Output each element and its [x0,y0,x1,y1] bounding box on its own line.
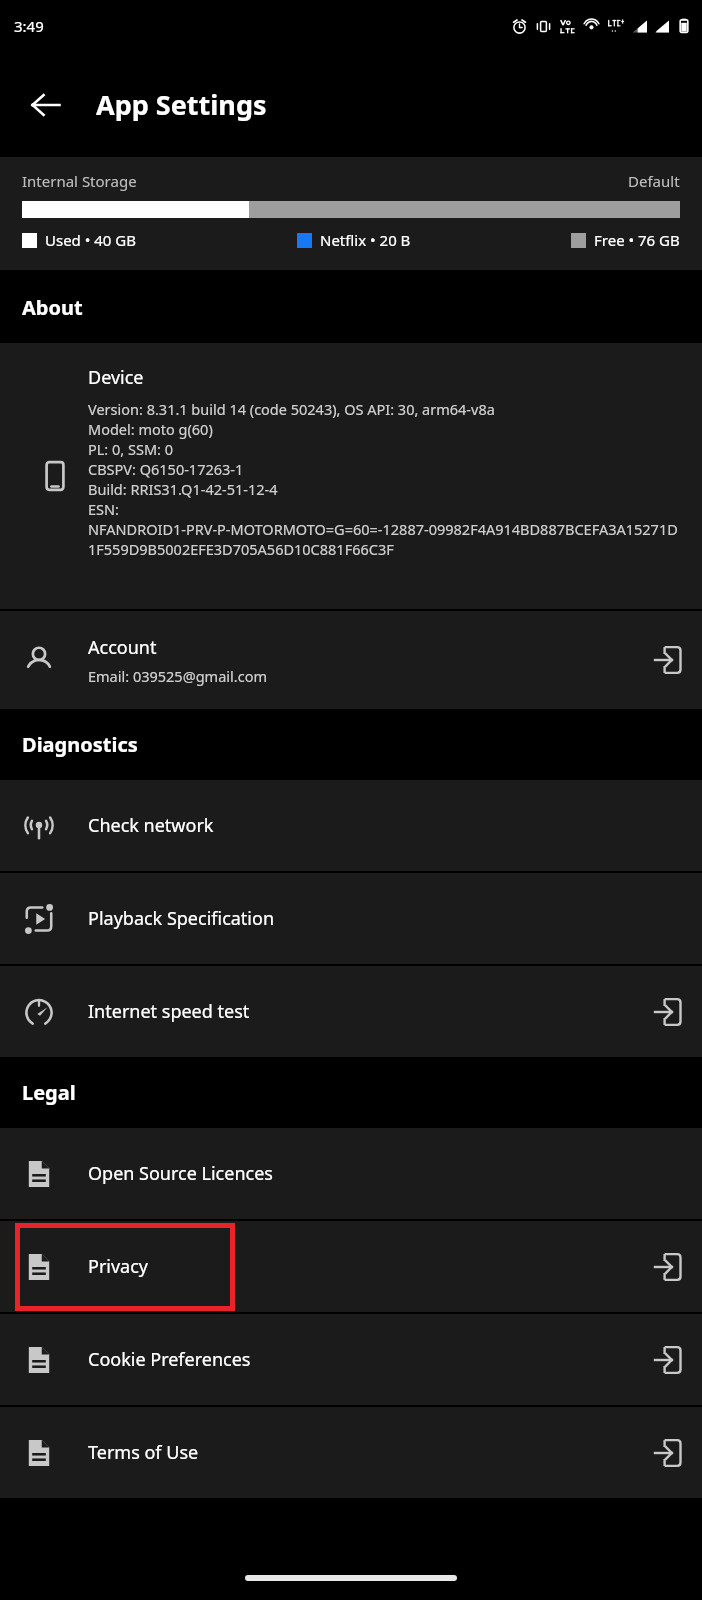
staticText: 3:49 [14,16,44,36]
staticText: Legal [22,1079,76,1106]
staticText: Build: RRIS31.Q1-42-51-12-4 [88,479,278,499]
staticText: Model: moto g(60) [88,419,213,439]
staticText: Email: 039525@gmail.com [88,666,267,686]
button[interactable]: Open Source Licences [0,1128,702,1219]
staticText: Internet speed test [88,999,652,1024]
button[interactable]: Device [0,343,702,609]
staticText: CBSPV: Q6150-17263-1 [88,459,244,479]
staticText: App Settings [96,86,267,123]
staticText: About [22,294,83,321]
staticText: Open Source Licences [88,1161,682,1186]
staticText: Playback Specification [88,906,682,931]
staticText: Check network [88,813,682,838]
staticText: Internal Storage [22,171,137,191]
button[interactable]: Account [0,611,702,709]
staticText: Version: 8.31.1 build 14 (code 50243), O… [88,399,495,419]
staticText: Default [628,171,680,191]
button[interactable]: Cookie Preferences [0,1314,702,1405]
button[interactable]: Check network [0,780,702,871]
button[interactable]: Terms of Use [0,1407,702,1498]
staticText: Used • 40 GB [45,230,137,250]
staticText: Device [88,365,144,390]
staticText: NFANDROID1-PRV-P-MOTORMOTO=G=60=-12887-0… [88,519,682,560]
staticText: Privacy [88,1254,652,1279]
staticText: Cookie Preferences [88,1347,652,1372]
staticText: Free • 76 GB [594,230,680,250]
button[interactable]: Back [20,79,72,131]
staticText: Account [88,635,157,660]
staticText: PL: 0, SSM: 0 [88,439,173,459]
button[interactable]: Privacy [0,1221,702,1312]
button[interactable]: Internet speed test [0,966,702,1057]
staticText: ESN: [88,499,119,519]
staticText: Diagnostics [22,731,138,758]
staticText: Terms of Use [88,1440,652,1465]
button[interactable]: Playback Specification [0,873,702,964]
staticText: Netflix • 20 B [320,230,411,250]
